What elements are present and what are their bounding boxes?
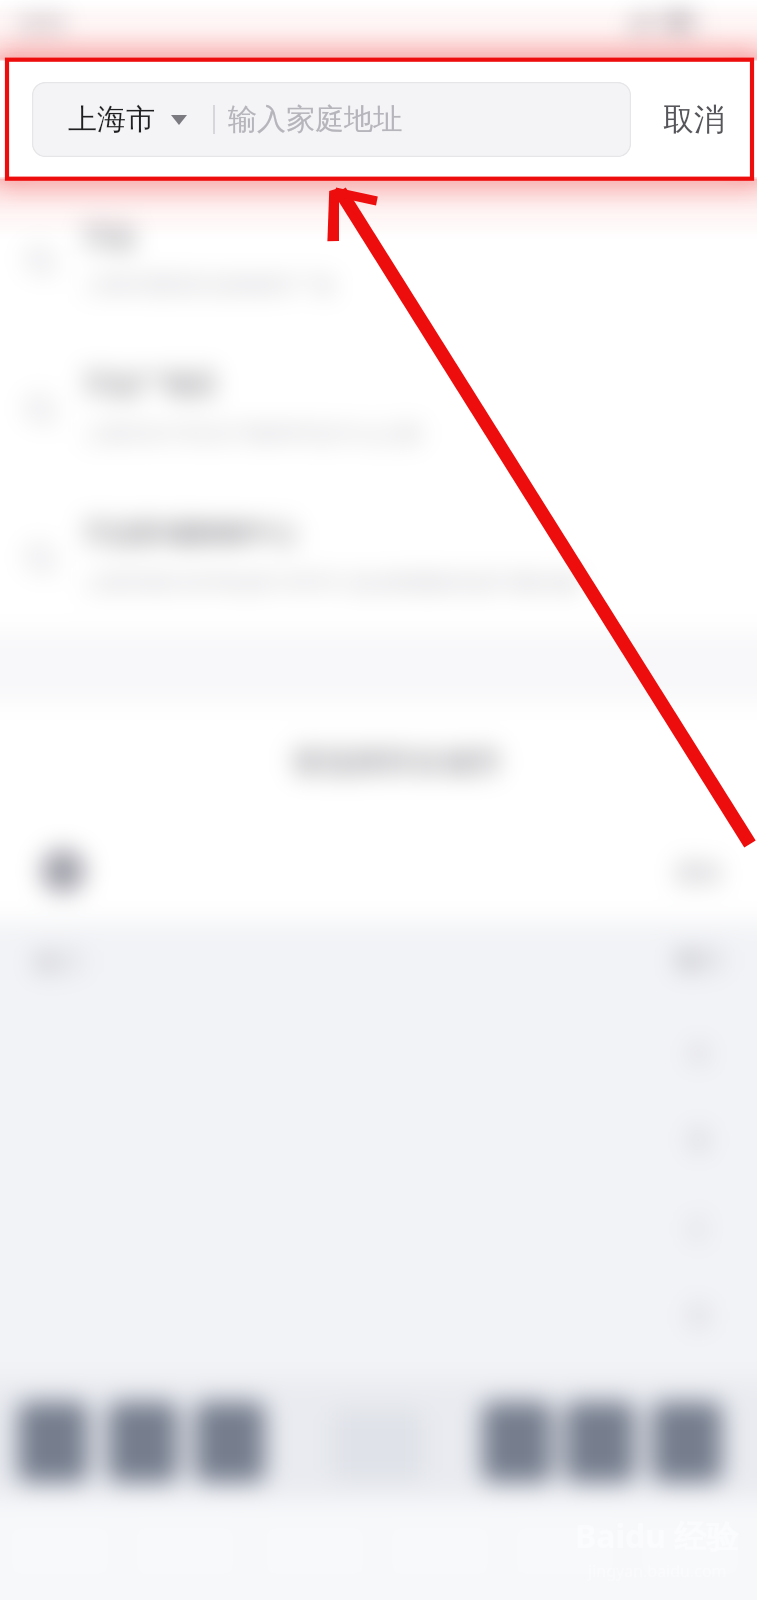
button[interactable]: [108, 1402, 178, 1482]
button[interactable]: [565, 1402, 635, 1482]
button[interactable]: 键盘按键 1: [18, 1402, 88, 1482]
button[interactable]: 热门: [0, 921, 757, 1003]
button[interactable]: 万达影城购物中心: [0, 482, 757, 631]
button[interactable]: 热门: [665, 934, 733, 986]
staticText: 上海市: [68, 101, 155, 138]
button[interactable]: 万达: [0, 184, 757, 333]
button[interactable]: 万达广场店: [0, 333, 757, 482]
button[interactable]: 键盘按键 2: [108, 1402, 178, 1482]
button[interactable]: [0, 821, 757, 921]
staticText: 万达: [82, 220, 136, 254]
button[interactable]: 热门: [665, 934, 733, 986]
button[interactable]: [18, 1402, 88, 1482]
button[interactable]: 定位: [665, 846, 733, 898]
button[interactable]: 键盘按键 3: [195, 1402, 265, 1482]
button[interactable]: 键盘按键 6: [652, 1402, 722, 1482]
staticText: 万达广场店: [82, 367, 217, 401]
button[interactable]: 万达影城购物中心: [0, 482, 757, 631]
button[interactable]: 定位当前城市: [0, 818, 757, 918]
button[interactable]: 键盘按键 4: [482, 1402, 552, 1482]
button[interactable]: 键盘按键 5: [565, 1402, 635, 1482]
button[interactable]: [652, 1402, 722, 1482]
button[interactable]: [195, 1402, 265, 1482]
staticText: 定位: [676, 858, 722, 887]
staticText: 9:41: [20, 6, 68, 39]
staticText: 请选择所在城市: [292, 743, 502, 781]
button[interactable]: 取消: [631, 61, 757, 177]
button[interactable]: 万达广场店: [0, 333, 757, 482]
staticText: 输入家庭地址: [228, 101, 402, 138]
staticText: 热门: [676, 946, 722, 975]
button[interactable]: 万达: [0, 184, 757, 333]
button[interactable]: 上海市: [32, 82, 631, 157]
staticText: 上海市闵行区申虹路1000号 近虹桥国际机场T2航站楼: [82, 568, 580, 597]
staticText: 万达影城购物中心: [82, 516, 298, 550]
staticText: 取消: [663, 100, 725, 139]
button[interactable]: 定位: [665, 846, 733, 898]
button[interactable]: [482, 1402, 552, 1482]
